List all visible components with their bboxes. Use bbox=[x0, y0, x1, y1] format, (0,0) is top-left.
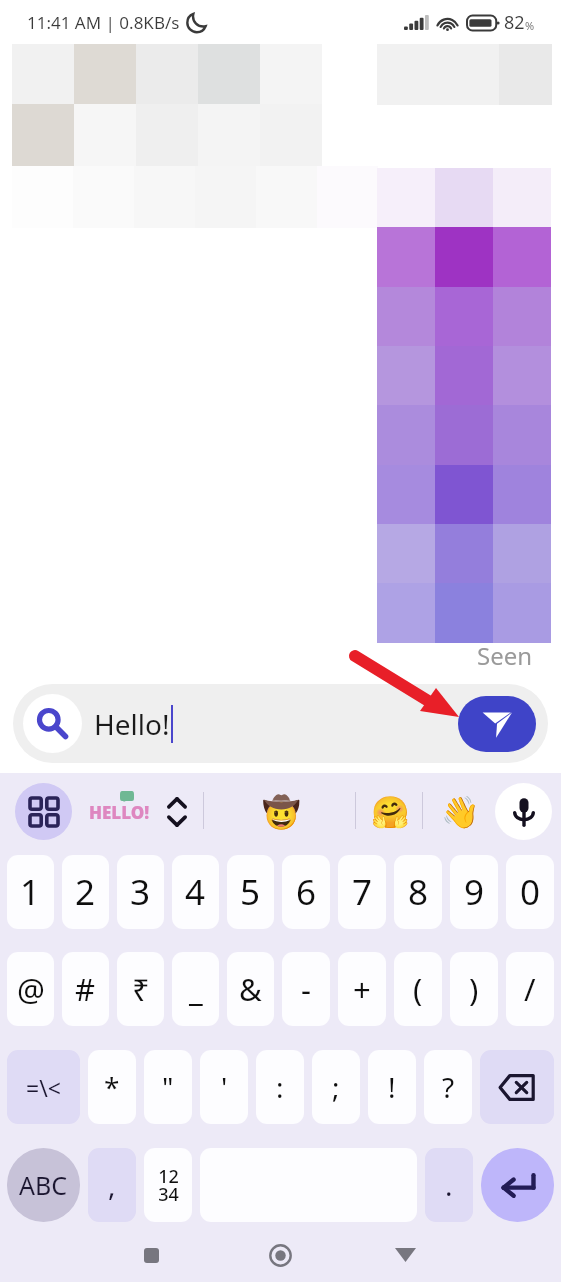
staticText: ? bbox=[442, 1068, 455, 1106]
staticText: , bbox=[108, 1166, 116, 1204]
button[interactable]: / bbox=[506, 952, 554, 1026]
button[interactable]: " bbox=[144, 1050, 192, 1124]
staticText: =\< bbox=[26, 1072, 61, 1103]
button[interactable]: 8 bbox=[394, 855, 442, 929]
button[interactable]: ₹ bbox=[117, 952, 164, 1026]
staticText: 3 bbox=[130, 868, 151, 916]
button[interactable]: Expand bbox=[165, 796, 189, 828]
button[interactable]: Backspace bbox=[480, 1050, 554, 1124]
button[interactable]: ! bbox=[368, 1050, 416, 1124]
button[interactable]: ) bbox=[450, 952, 498, 1026]
button[interactable]: Recents bbox=[121, 1227, 181, 1282]
button[interactable]: Send bbox=[458, 696, 536, 752]
staticText: 6 bbox=[296, 868, 317, 916]
staticText: 7 bbox=[352, 868, 373, 916]
staticText: 🤠 bbox=[262, 794, 300, 830]
button[interactable]: : bbox=[256, 1050, 304, 1124]
staticText: 82 bbox=[504, 10, 525, 35]
staticText: ! bbox=[388, 1068, 396, 1106]
button[interactable]: Back bbox=[375, 1227, 435, 1282]
button[interactable]: 👋 bbox=[441, 793, 479, 831]
staticText: Seen bbox=[477, 639, 533, 672]
button[interactable]: ABC bbox=[7, 1148, 80, 1222]
button[interactable]: Voice input bbox=[495, 783, 552, 840]
button[interactable]: # bbox=[62, 952, 109, 1026]
button[interactable]: Home bbox=[250, 1227, 310, 1282]
button[interactable]: _ bbox=[172, 952, 219, 1026]
staticText: / bbox=[524, 968, 536, 1010]
staticText: + bbox=[353, 968, 371, 1010]
staticText: 4 bbox=[185, 868, 206, 916]
staticText: ' bbox=[221, 1068, 228, 1106]
staticText: 0 bbox=[520, 868, 541, 916]
button[interactable]: 2 bbox=[62, 855, 109, 929]
button[interactable]: , bbox=[88, 1148, 136, 1222]
staticText: * bbox=[104, 1068, 120, 1106]
button[interactable]: * bbox=[88, 1050, 136, 1124]
button[interactable]: 12 34 bbox=[144, 1148, 192, 1222]
button[interactable]: & bbox=[227, 952, 274, 1026]
button[interactable]: 0 bbox=[506, 855, 554, 929]
button[interactable]: ; bbox=[312, 1050, 360, 1124]
staticText: - bbox=[301, 968, 311, 1010]
button[interactable]: =\< bbox=[7, 1050, 80, 1124]
staticText: ( bbox=[413, 968, 423, 1010]
staticText: @ bbox=[17, 968, 45, 1010]
staticText: ; bbox=[332, 1068, 340, 1106]
staticText: Hello! bbox=[94, 705, 170, 743]
staticText: 9 bbox=[464, 868, 485, 916]
staticText: % bbox=[525, 18, 535, 33]
staticText: ₹ bbox=[132, 968, 150, 1010]
staticText: # bbox=[75, 968, 96, 1010]
staticText: 2 bbox=[75, 868, 96, 916]
staticText: " bbox=[162, 1068, 174, 1106]
button[interactable]: ( bbox=[394, 952, 442, 1026]
button[interactable]: ? bbox=[424, 1050, 472, 1124]
button[interactable]: . bbox=[425, 1148, 473, 1222]
staticText: ) bbox=[469, 968, 479, 1010]
button[interactable]: Hello! bbox=[13, 684, 548, 763]
button[interactable]: Enter bbox=[481, 1148, 554, 1222]
button[interactable]: 4 bbox=[172, 855, 219, 929]
staticText: _ bbox=[189, 968, 203, 1010]
staticText: . bbox=[445, 1166, 453, 1204]
button[interactable]: 5 bbox=[227, 855, 274, 929]
staticText: & bbox=[239, 968, 262, 1010]
staticText: 11:41 AM | 0.8KB/s bbox=[27, 11, 180, 34]
staticText: 👋 bbox=[441, 794, 479, 830]
staticText: ABC bbox=[19, 1168, 68, 1202]
staticText: 12 34 bbox=[158, 1164, 179, 1206]
button[interactable]: ' bbox=[200, 1050, 248, 1124]
button[interactable]: 🤗 bbox=[371, 793, 409, 831]
button[interactable]: - bbox=[282, 952, 330, 1026]
staticText: 8 bbox=[408, 868, 429, 916]
button[interactable]: + bbox=[338, 952, 386, 1026]
staticText: 5 bbox=[240, 868, 261, 916]
button[interactable]: 1 bbox=[7, 855, 54, 929]
staticText: 🤗 bbox=[371, 794, 409, 830]
button[interactable]: 6 bbox=[282, 855, 330, 929]
button[interactable]: 3 bbox=[117, 855, 164, 929]
staticText: : bbox=[276, 1068, 284, 1106]
button[interactable]: 9 bbox=[450, 855, 498, 929]
staticText: HELLO! bbox=[89, 801, 150, 824]
button[interactable]: Keyboard options bbox=[15, 783, 72, 840]
button[interactable]: 🤠 bbox=[262, 793, 300, 831]
staticText: 1 bbox=[20, 868, 41, 916]
button[interactable]: HELLO! bbox=[87, 788, 167, 836]
button[interactable]: 7 bbox=[338, 855, 386, 929]
button[interactable]: @ bbox=[7, 952, 54, 1026]
